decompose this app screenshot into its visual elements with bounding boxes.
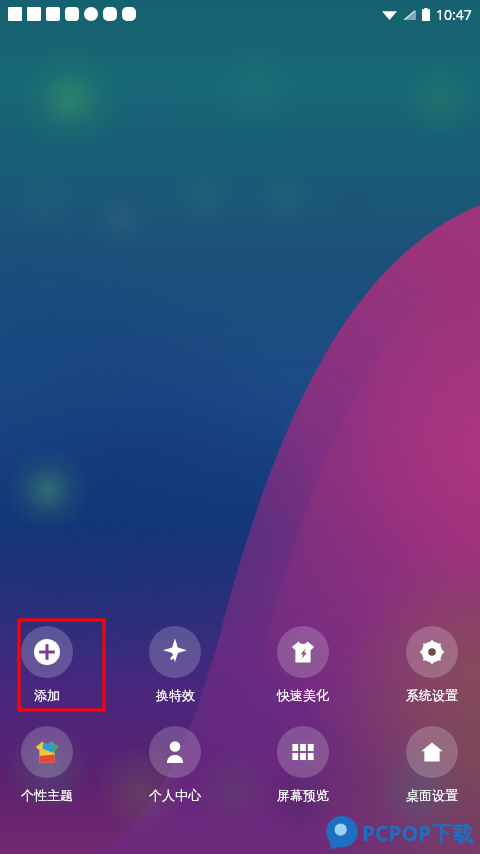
staticText: 屏幕预览 [277, 787, 329, 803]
button[interactable]: 桌面设置 Desktop settings [390, 726, 474, 810]
staticText: 个人中心 [149, 787, 201, 803]
staticText: 系统设置 [406, 687, 458, 703]
button[interactable]: 快速美化 Quick beautify [261, 626, 345, 710]
staticText: 10:47 [436, 5, 472, 24]
button[interactable]: 添加 Add [5, 626, 89, 710]
button[interactable]: 个性主题 Personal theme [5, 726, 89, 810]
staticText: 桌面设置 [406, 787, 458, 803]
staticText: 添加 [34, 687, 60, 703]
staticText: PCPOP下载 [362, 819, 474, 848]
staticText: 个性主题 [21, 787, 73, 803]
button[interactable]: 屏幕预览 Screen preview [261, 726, 345, 810]
staticText: 快速美化 [277, 687, 329, 703]
button[interactable]: 个人中心 Personal center [133, 726, 217, 810]
button[interactable]: 系统设置 System settings [390, 626, 474, 710]
staticText: 换特效 [156, 687, 195, 703]
button[interactable]: 换特效 Change effects [133, 626, 217, 710]
